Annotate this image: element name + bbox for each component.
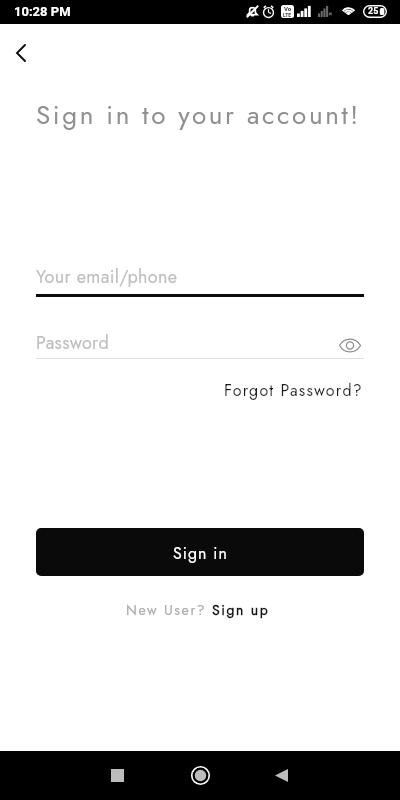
button[interactable]: Sign up <box>212 600 270 620</box>
button[interactable]: Show password <box>334 329 366 361</box>
button[interactable]: Back <box>2 34 40 72</box>
button[interactable]: Back <box>257 751 305 800</box>
staticText: Sign up <box>212 600 270 620</box>
staticText: 10:28 PM <box>14 4 71 19</box>
staticText: New User? <box>126 600 212 620</box>
staticText: LTE <box>283 12 292 18</box>
button[interactable]: Home <box>176 751 224 800</box>
staticText: Your email/phone <box>36 264 178 290</box>
staticText: 25 <box>368 6 379 17</box>
staticText: Vo <box>284 5 292 12</box>
button[interactable]: Forgot Password? <box>219 374 368 407</box>
staticText: Forgot Password? <box>224 379 363 402</box>
staticText: Sign in <box>173 542 228 565</box>
button[interactable]: Recents <box>93 751 141 800</box>
staticText: Password <box>36 330 110 356</box>
staticText: Sign in to your account! <box>36 96 361 134</box>
button[interactable]: Sign in <box>36 528 364 576</box>
